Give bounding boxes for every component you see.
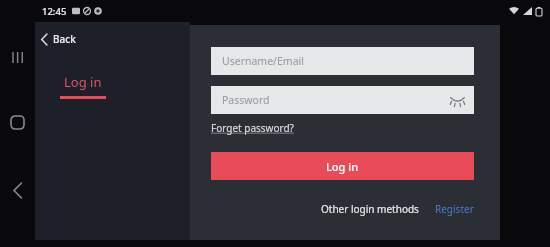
staticText: Forget password?: [211, 121, 294, 135]
button[interactable]: Password: [211, 86, 474, 114]
button[interactable]: Log in: [211, 152, 474, 180]
staticText: Other login methods: [321, 202, 419, 216]
button[interactable]: Forget password?: [211, 121, 294, 135]
button[interactable]: Recent apps: [0, 44, 35, 70]
staticText: Register: [435, 202, 474, 216]
staticText: Log in: [326, 159, 359, 174]
staticText: Back: [53, 32, 76, 46]
staticText: Username/Email: [222, 54, 304, 68]
staticText: Log in: [64, 73, 102, 91]
button[interactable]: Register: [435, 202, 474, 216]
button[interactable]: Show password: [446, 89, 468, 111]
button[interactable]: Home: [0, 109, 35, 135]
button[interactable]: Username/Email: [211, 47, 474, 75]
staticText: 12:45: [42, 5, 67, 18]
button[interactable]: Back: [41, 28, 76, 50]
staticText: Password: [222, 93, 270, 107]
button[interactable]: Log in: [60, 73, 106, 99]
button[interactable]: Back: [0, 177, 35, 203]
button[interactable]: Other login methods: [321, 202, 419, 216]
